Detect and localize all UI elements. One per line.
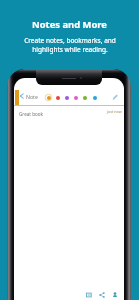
button[interactable]: [71, 93, 80, 102]
button[interactable]: [62, 93, 71, 102]
staticText: Note: [26, 93, 38, 100]
staticText: just now: [107, 109, 122, 114]
button[interactable]: [53, 93, 62, 102]
button[interactable]: Copy note: [84, 290, 93, 299]
staticText: Notes and More: [32, 18, 107, 31]
staticText: Great book: [19, 111, 44, 117]
button[interactable]: Back: [18, 92, 26, 100]
button[interactable]: Share: [97, 290, 106, 299]
button[interactable]: [44, 93, 53, 102]
button[interactable]: [90, 93, 99, 102]
button[interactable]: Edit: [111, 93, 119, 101]
button[interactable]: [80, 93, 89, 102]
button[interactable]: Account: [110, 290, 119, 299]
staticText: Create notes, bookmarks, and highlights …: [24, 36, 116, 54]
